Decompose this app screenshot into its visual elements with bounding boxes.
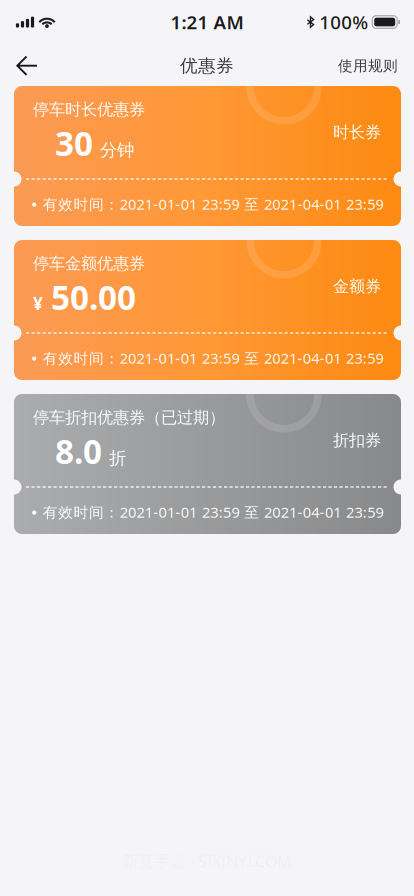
staticText: 时长券 — [333, 122, 381, 143]
button[interactable]: 停车折扣优惠券（已过期） — [14, 394, 401, 534]
staticText: 停车时长优惠券 — [33, 99, 145, 120]
staticText: 有效时间：2021-01-01 23:59 至 2021-04-01 23:59 — [43, 348, 384, 368]
button[interactable]: 停车金额优惠券 — [14, 240, 401, 380]
staticText: 停车金额优惠券 — [33, 253, 145, 274]
staticText: 停车折扣优惠券（已过期） — [33, 407, 225, 428]
staticText: 50.00 — [51, 274, 136, 320]
staticText: 金额券 — [333, 276, 381, 297]
staticText: 有效时间：2021-01-01 23:59 至 2021-04-01 23:59 — [43, 194, 384, 214]
button[interactable]: Back — [5, 44, 49, 88]
staticText: 100% — [319, 9, 368, 35]
staticText: 分钟 — [100, 139, 134, 161]
staticText: 1:21 AM — [170, 9, 243, 35]
staticText: 有效时间：2021-01-01 23:59 至 2021-04-01 23:59 — [43, 502, 384, 522]
staticText: 优惠券 — [180, 55, 234, 77]
staticText: 使用规则 — [338, 57, 398, 75]
button[interactable]: 使用规则 — [330, 44, 406, 88]
staticText: ¥ — [33, 291, 43, 315]
staticText: 折扣券 — [333, 430, 381, 451]
staticText: 30 — [55, 120, 93, 166]
staticText: 8.0 — [55, 428, 102, 474]
button[interactable]: 停车时长优惠券 — [14, 86, 401, 226]
staticText: 折 — [109, 447, 126, 469]
